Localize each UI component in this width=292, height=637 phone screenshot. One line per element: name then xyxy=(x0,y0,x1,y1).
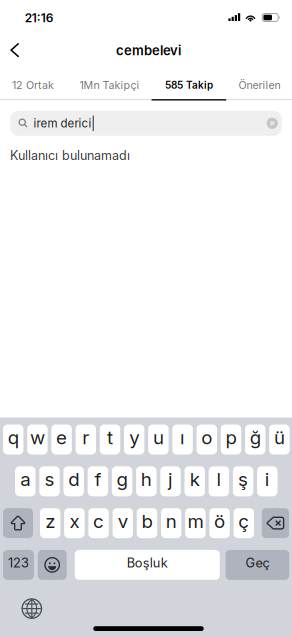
button[interactable]: u xyxy=(148,424,169,454)
button[interactable]: e xyxy=(51,424,72,454)
staticText: ç xyxy=(238,510,249,532)
staticText: ğ xyxy=(250,426,261,449)
button[interactable]: ş xyxy=(233,466,253,496)
button[interactable]: Switch keyboard xyxy=(16,593,48,625)
button[interactable]: m xyxy=(185,508,206,538)
button[interactable]: Önerilen xyxy=(223,71,292,99)
staticText: 1Mn Takipçi xyxy=(79,78,139,91)
staticText: a xyxy=(20,468,30,491)
staticText: 21:16 xyxy=(25,10,54,25)
staticText: d xyxy=(68,468,79,491)
staticText: p xyxy=(225,426,236,449)
button[interactable]: Geç xyxy=(225,550,289,580)
staticText: 12 Ortak xyxy=(12,78,54,91)
button[interactable]: i xyxy=(257,466,277,496)
button[interactable]: 1Mn Takipçi xyxy=(73,71,146,99)
staticText: k xyxy=(190,468,200,491)
staticText: v xyxy=(118,510,128,532)
button[interactable]: n xyxy=(161,508,181,538)
staticText: x xyxy=(69,510,79,532)
staticText: h xyxy=(141,468,152,491)
staticText: b xyxy=(141,510,152,532)
button[interactable]: Shift xyxy=(3,508,33,538)
button[interactable]: s xyxy=(39,466,60,496)
button[interactable]: Boşluk xyxy=(75,550,220,580)
button[interactable]: q xyxy=(3,424,23,454)
button[interactable]: f xyxy=(88,466,108,496)
button[interactable]: y xyxy=(124,424,144,454)
staticText: z xyxy=(45,510,55,532)
button[interactable]: Back xyxy=(0,35,30,65)
staticText: r xyxy=(82,426,89,449)
staticText: Kullanıcı bulunamadı xyxy=(10,148,130,163)
staticText: ı xyxy=(180,426,185,449)
staticText: y xyxy=(129,426,139,449)
button[interactable]: j xyxy=(160,466,181,496)
button[interactable]: k xyxy=(184,466,205,496)
staticText: i xyxy=(265,468,270,491)
button[interactable]: g xyxy=(112,466,132,496)
button[interactable]: ı xyxy=(172,424,193,454)
staticText: irem derici xyxy=(33,116,91,130)
button[interactable]: w xyxy=(27,424,48,454)
button[interactable]: d xyxy=(63,466,84,496)
button[interactable]: c xyxy=(88,508,109,538)
staticText: cembelevi xyxy=(116,43,181,58)
button[interactable]: b xyxy=(137,508,157,538)
staticText: q xyxy=(8,426,19,449)
button[interactable]: 585 Takip xyxy=(152,71,225,99)
button[interactable]: l xyxy=(209,466,229,496)
staticText: l xyxy=(216,468,221,491)
staticText: u xyxy=(153,426,164,449)
staticText: c xyxy=(93,510,104,532)
button[interactable]: 123 xyxy=(3,550,34,580)
staticText: ö xyxy=(214,510,225,532)
button[interactable]: p xyxy=(221,424,241,454)
staticText: ş xyxy=(238,468,248,491)
button[interactable]: x xyxy=(64,508,85,538)
button[interactable]: Delete xyxy=(262,508,289,538)
button[interactable]: z xyxy=(40,508,60,538)
staticText: t xyxy=(107,426,113,449)
staticText: w xyxy=(30,426,45,449)
button[interactable]: a xyxy=(15,466,35,496)
button[interactable]: Clear search xyxy=(267,118,278,129)
staticText: Boşluk xyxy=(127,555,168,571)
staticText: f xyxy=(94,468,101,491)
staticText: 585 Takip xyxy=(165,79,213,91)
staticText: n xyxy=(166,510,177,532)
staticText: m xyxy=(187,510,203,532)
staticText: s xyxy=(44,468,54,491)
button[interactable]: ü xyxy=(269,424,290,454)
button[interactable]: h xyxy=(136,466,156,496)
staticText: Önerilen xyxy=(238,78,280,91)
button[interactable]: r xyxy=(76,424,96,454)
staticText: j xyxy=(168,468,173,491)
staticText: 123 xyxy=(8,555,29,571)
staticText: ü xyxy=(274,426,285,449)
button[interactable]: Emoji keyboard xyxy=(38,550,67,580)
button[interactable]: ğ xyxy=(245,424,265,454)
staticText: g xyxy=(117,468,128,491)
staticText: Geç xyxy=(245,555,269,571)
staticText: o xyxy=(201,426,212,449)
button[interactable]: t xyxy=(100,424,120,454)
staticText: e xyxy=(56,426,67,449)
button[interactable]: o xyxy=(197,424,217,454)
button[interactable]: 12 Ortak xyxy=(0,71,69,99)
button[interactable]: v xyxy=(113,508,133,538)
button[interactable]: ö xyxy=(209,508,230,538)
button[interactable]: ç xyxy=(234,508,254,538)
